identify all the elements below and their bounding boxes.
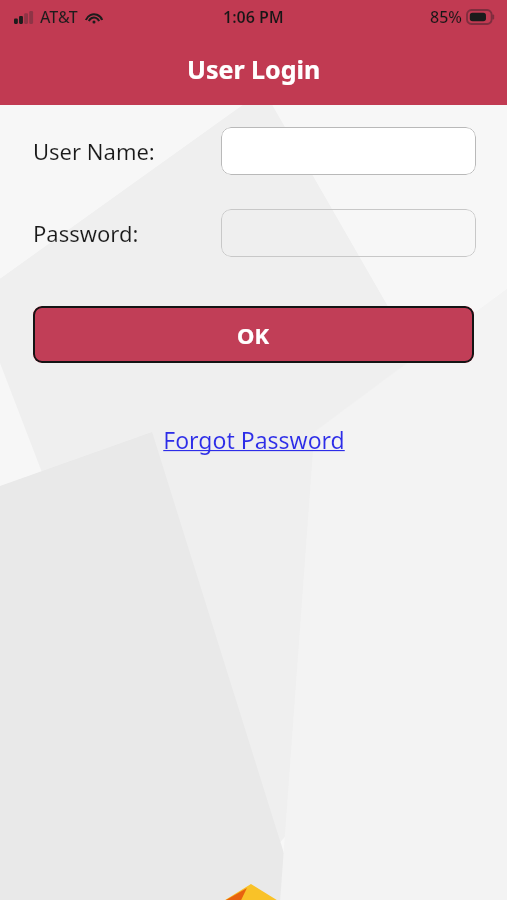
staticText: Forgot Password (163, 424, 345, 455)
button[interactable]: Password input (221, 209, 476, 257)
staticText: Password: (33, 218, 139, 248)
button[interactable]: Forgot Password (157, 422, 351, 457)
staticText: User Name: (33, 136, 155, 166)
staticText: 1:06 PM (223, 6, 284, 28)
button[interactable]: OK (33, 306, 474, 363)
staticText: User Login (187, 52, 321, 86)
staticText: OK (237, 320, 270, 350)
staticText: 85% (430, 6, 462, 28)
staticText: AT&T (40, 6, 78, 28)
button[interactable]: User name input (221, 127, 476, 175)
